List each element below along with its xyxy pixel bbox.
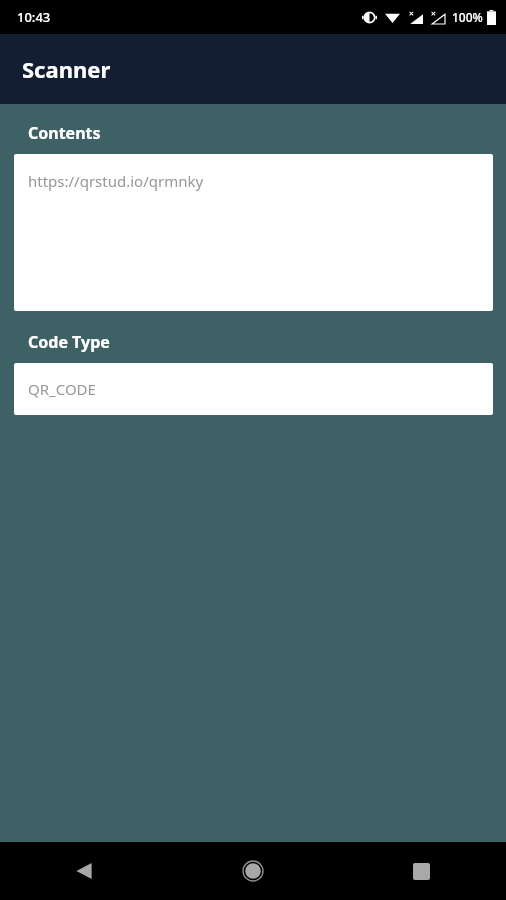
button[interactable]: Home (168, 842, 337, 900)
button[interactable]: https://qrstud.io/qrmnky (14, 154, 493, 311)
staticText: https://qrstud.io/qrmnky (28, 171, 204, 191)
staticText: Contents (28, 122, 101, 144)
button[interactable]: Recent apps (337, 842, 506, 900)
staticText: Code Type (28, 331, 110, 353)
button[interactable]: Back (0, 842, 168, 900)
button[interactable]: QR_CODE (14, 363, 493, 415)
staticText: QR_CODE (28, 379, 96, 399)
staticText: Scanner (22, 54, 111, 84)
staticText: 10:43 (17, 8, 51, 26)
staticText: 100% (452, 9, 483, 25)
